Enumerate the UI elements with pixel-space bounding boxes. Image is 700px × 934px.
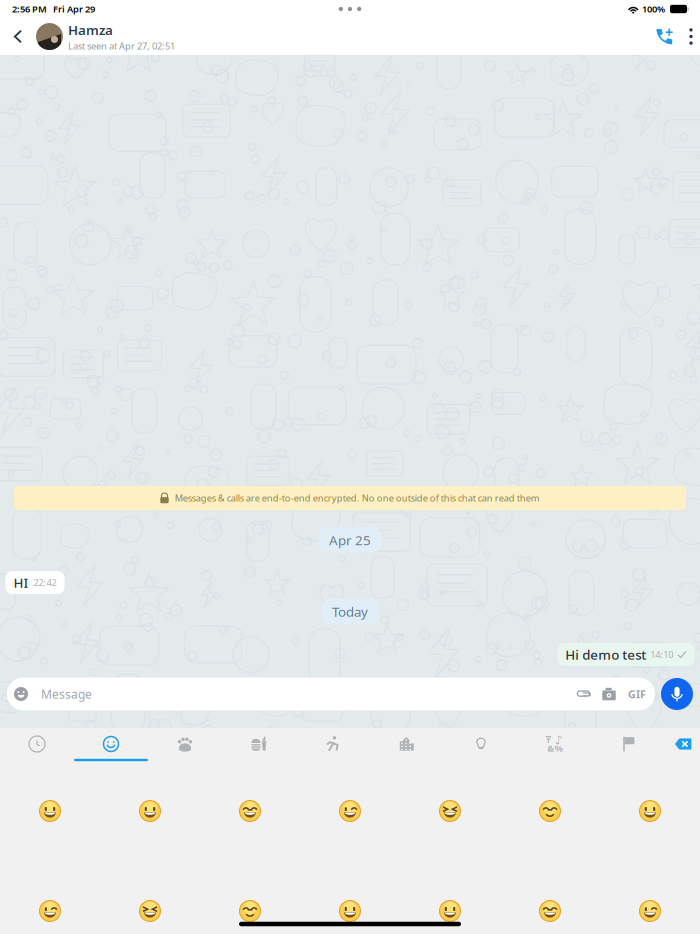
button[interactable]: Emoji (20, 789, 80, 833)
button[interactable]: Camera (596, 679, 622, 709)
staticText: 14:10 (650, 648, 673, 661)
button[interactable]: Emoji (620, 889, 680, 933)
button[interactable]: Emoji (520, 789, 580, 833)
staticText: Today (332, 603, 368, 620)
staticText: 22:42 (33, 576, 56, 589)
button[interactable]: Emoji (320, 789, 380, 833)
button[interactable]: Emoji (420, 889, 480, 933)
button[interactable]: Emoji (320, 889, 380, 933)
staticText: % (554, 742, 562, 754)
staticText: Apr 25 (329, 531, 371, 549)
staticText: Hamza (68, 21, 113, 39)
button[interactable]: Flags (600, 727, 660, 761)
button[interactable]: Recently used (7, 727, 67, 761)
staticText: Message (41, 686, 92, 702)
staticText: Hi demo test (565, 646, 646, 663)
staticText: ♪ (555, 733, 563, 747)
button[interactable]: Smileys and people (81, 727, 141, 761)
button[interactable]: GIF (624, 679, 650, 709)
button[interactable]: Emoji (20, 889, 80, 933)
button[interactable]: Objects (451, 727, 511, 761)
button[interactable]: Travel and places (377, 727, 437, 761)
button[interactable]: Video call (651, 18, 679, 55)
button[interactable]: Emoji (8, 679, 34, 709)
button[interactable]: Emoji (120, 889, 180, 933)
button[interactable]: Emoji (520, 889, 580, 933)
button[interactable]: Emoji (420, 789, 480, 833)
button[interactable]: Emoji (220, 789, 280, 833)
button[interactable]: Emoji (620, 789, 680, 833)
button[interactable]: Emoji (120, 789, 180, 833)
staticText: Messages & calls are end-to-end encrypte… (175, 492, 540, 504)
button[interactable]: Activity (303, 727, 363, 761)
button[interactable]: Emoji (220, 889, 280, 933)
button[interactable]: Back (3, 18, 33, 55)
button[interactable]: Food and drink (229, 727, 289, 761)
staticText: 2:56 PM (12, 3, 47, 15)
button[interactable]: Backspace (653, 727, 700, 761)
staticText: HI (13, 574, 28, 591)
button[interactable]: Attach (571, 679, 597, 709)
staticText: Fri Apr 29 (53, 3, 95, 15)
staticText: GIF (628, 687, 646, 701)
button[interactable]: Symbols (525, 727, 585, 761)
button[interactable]: Hamza (36, 21, 175, 52)
button[interactable]: More options (682, 18, 700, 55)
button[interactable]: Record voice message (661, 678, 693, 710)
staticText: Last seen at Apr 27, 02:51 (68, 40, 175, 52)
staticText: & (547, 742, 554, 754)
button[interactable]: Animals and nature (155, 727, 215, 761)
staticText: 100% (642, 3, 665, 15)
